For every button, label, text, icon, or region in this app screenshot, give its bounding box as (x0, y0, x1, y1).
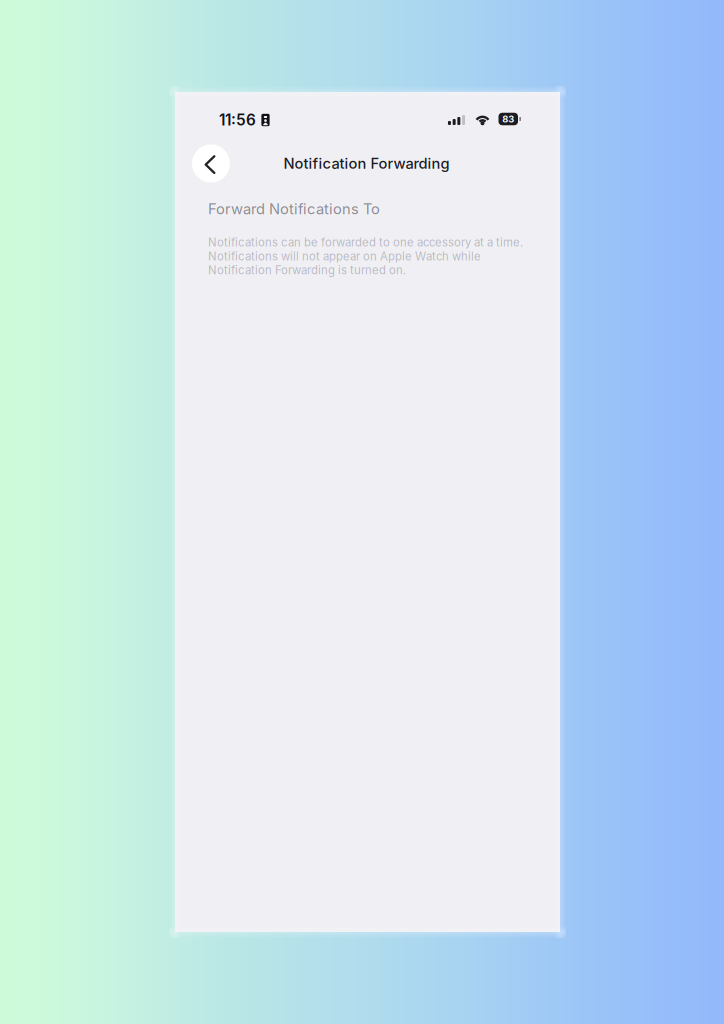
staticText: Notifications will not appear on Apple W… (208, 249, 481, 263)
staticText: Notification Forwarding is turned on. (208, 263, 406, 277)
staticText: Forward Notifications To (208, 200, 380, 218)
staticText: Notification Forwarding (283, 155, 449, 172)
button[interactable]: Back (192, 144, 230, 182)
staticText: 83 (502, 113, 514, 125)
staticText: Notifications can be forwarded to one ac… (208, 236, 523, 249)
staticText: 11:56 (219, 111, 256, 129)
